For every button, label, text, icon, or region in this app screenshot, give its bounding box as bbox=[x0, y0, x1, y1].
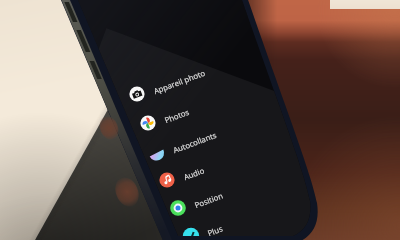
button[interactable]: Share sheet bbox=[0, 0, 400, 240]
